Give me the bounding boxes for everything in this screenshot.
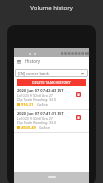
staticText: Gallon xyxy=(37,102,48,107)
staticText: 2020 Jun 07 07:42:43 IST xyxy=(17,88,64,93)
button[interactable]: Delete entry xyxy=(76,92,81,97)
button[interactable]: 2020 Jun 07 07:41:31 IST xyxy=(14,110,89,132)
button[interactable]: Menu xyxy=(16,59,21,64)
button[interactable]: 2020 Jun 07 07:42:43 IST xyxy=(14,87,89,109)
button[interactable]: Delete entry xyxy=(76,115,81,120)
button[interactable]: [IN] corner bank xyxy=(15,69,88,77)
staticText: Lvl 023 9 (Old) Gra 27 xyxy=(17,93,53,98)
staticText: Dip Scale Reading: 33.0 xyxy=(17,120,57,125)
staticText: 2020 Jun 07 07:41:31 IST xyxy=(17,111,64,116)
staticText: Lvl 023 9 (Old) Gra 27 xyxy=(17,116,53,121)
staticText: 916.31 xyxy=(21,102,34,107)
staticText: [IN] corner bank xyxy=(18,71,49,76)
staticText: DELETE TANK HISTORY xyxy=(32,80,71,85)
button[interactable]: DELETE TANK HISTORY xyxy=(17,79,86,86)
staticText: 4920.49 xyxy=(21,125,36,130)
staticText: History xyxy=(25,58,41,64)
staticText: Gallon xyxy=(39,125,50,130)
staticText: Volume history xyxy=(0,4,103,12)
button[interactable]: Menu xyxy=(14,57,89,65)
staticText: Dip Scale Reading: 33.0 xyxy=(17,97,57,102)
